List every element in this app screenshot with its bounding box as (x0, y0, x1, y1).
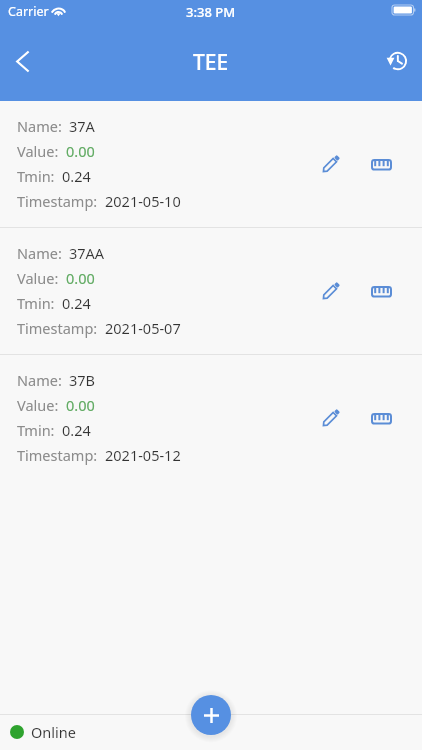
button[interactable]: Name: (0, 355, 422, 481)
button[interactable]: Measure (364, 147, 398, 181)
staticText: 0.24 (62, 420, 91, 440)
button[interactable]: Name: (0, 101, 422, 227)
button[interactable]: Name: (0, 228, 422, 354)
button[interactable]: Measure (364, 274, 398, 308)
staticText: 2021-05-12 (105, 445, 181, 465)
staticText: 37A (69, 116, 95, 136)
button[interactable]: Add (191, 695, 231, 735)
button[interactable]: Back (0, 39, 44, 83)
staticText: Value: (17, 141, 59, 161)
button[interactable]: Edit (314, 147, 348, 181)
button[interactable]: History (375, 39, 419, 83)
staticText: Online (31, 722, 76, 742)
staticText: TEE (193, 48, 229, 77)
staticText: Value: (17, 268, 59, 288)
staticText: 0.24 (62, 293, 91, 313)
staticText: 0.24 (62, 166, 91, 186)
staticText: 3:38 PM (186, 3, 236, 21)
button[interactable]: Measure (364, 401, 398, 435)
staticText: Timestamp: (17, 445, 98, 465)
staticText: 2021-05-07 (105, 318, 181, 338)
staticText: Tmin: (17, 420, 55, 440)
staticText: Tmin: (17, 293, 55, 313)
staticText: Timestamp: (17, 191, 98, 211)
staticText: Timestamp: (17, 318, 98, 338)
button[interactable]: Edit (314, 401, 348, 435)
staticText: Name: (17, 116, 62, 136)
button[interactable]: Edit (314, 274, 348, 308)
staticText: 0.00 (66, 395, 95, 415)
staticText: Name: (17, 243, 62, 263)
staticText: 37B (69, 370, 96, 390)
staticText: Tmin: (17, 166, 55, 186)
staticText: 2021-05-10 (105, 191, 181, 211)
staticText: Name: (17, 370, 62, 390)
staticText: Carrier (8, 3, 49, 20)
staticText: 37AA (69, 243, 105, 263)
staticText: 0.00 (66, 268, 95, 288)
staticText: Value: (17, 395, 59, 415)
staticText: 0.00 (66, 141, 95, 161)
